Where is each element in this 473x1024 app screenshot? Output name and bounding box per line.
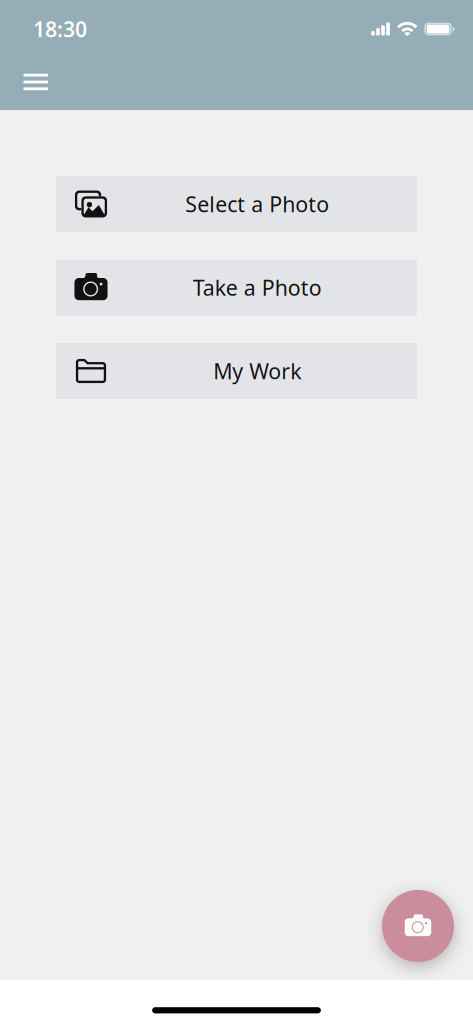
button[interactable]: Select a Photo bbox=[56, 176, 417, 232]
staticText: Select a Photo bbox=[185, 190, 329, 218]
staticText: My Work bbox=[213, 357, 301, 385]
staticText: 18:30 bbox=[33, 15, 87, 43]
button[interactable]: Take a Photo bbox=[56, 259, 417, 315]
button[interactable]: Camera bbox=[382, 890, 454, 962]
button[interactable]: My Work bbox=[56, 343, 417, 399]
button[interactable]: Menu bbox=[23, 60, 48, 104]
staticText: Take a Photo bbox=[193, 273, 322, 302]
